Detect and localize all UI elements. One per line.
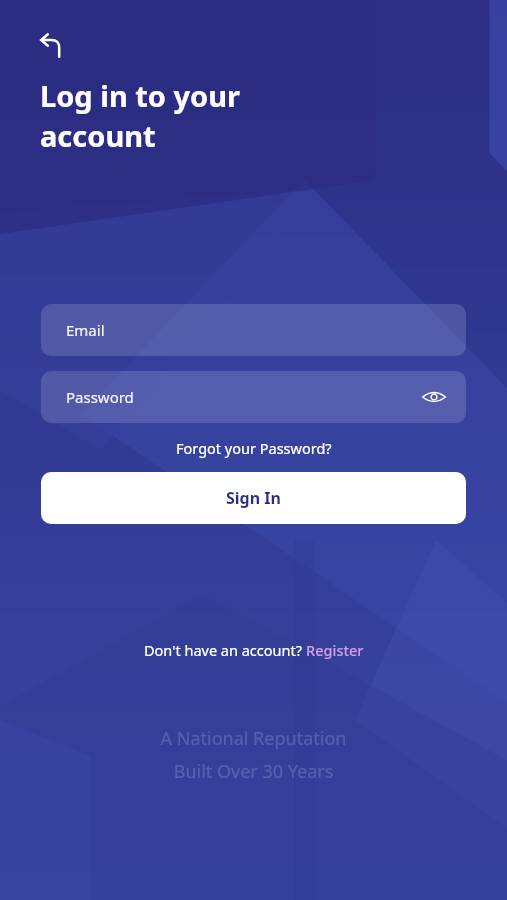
staticText: Don't have an account?: [144, 640, 306, 660]
staticText: Forgot your Password?: [176, 438, 332, 458]
button[interactable]: Forgot your Password?: [168, 436, 340, 460]
button[interactable]: Email: [41, 304, 466, 356]
staticText: Register: [306, 640, 364, 660]
button[interactable]: Don't have an account?: [134, 636, 374, 664]
button[interactable]: Sign In: [41, 472, 466, 524]
staticText: Sign In: [226, 487, 281, 509]
button[interactable]: Back: [28, 22, 76, 70]
staticText: Password: [66, 387, 134, 407]
button[interactable]: Password: [41, 371, 466, 423]
staticText: Log in to your account: [40, 76, 241, 156]
staticText: Email: [66, 320, 105, 340]
staticText: A National Reputation Built Over 30 Year…: [0, 726, 507, 783]
button[interactable]: Show password: [416, 379, 452, 415]
